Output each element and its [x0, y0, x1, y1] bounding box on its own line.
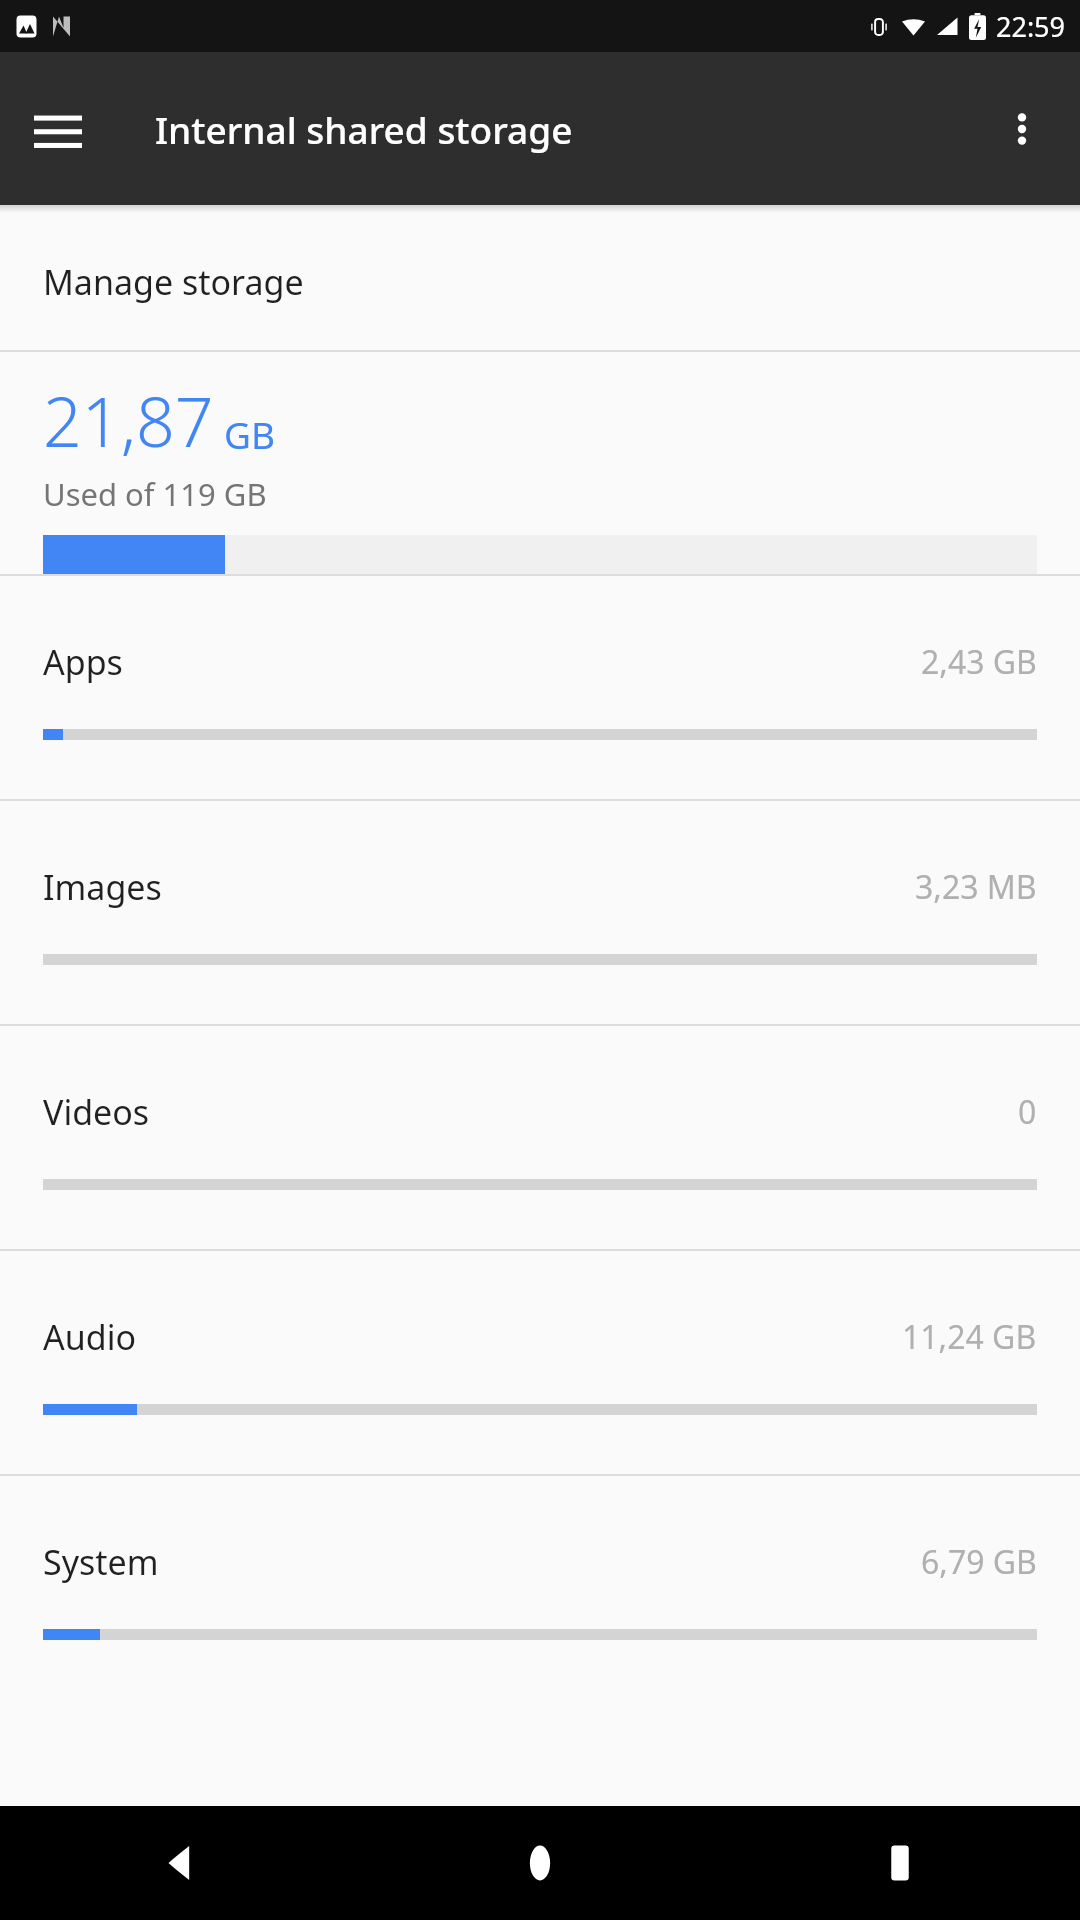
button[interactable]: Back — [0, 1806, 360, 1920]
staticText: System — [43, 1539, 921, 1585]
staticText: 11,24 GB — [902, 1315, 1037, 1359]
staticText: 0 — [1018, 1090, 1037, 1134]
staticText: 22:59 — [996, 8, 1066, 45]
button[interactable]: Videos — [0, 1026, 1080, 1249]
staticText: Videos — [43, 1089, 1018, 1135]
staticText: Used of 119 GB — [43, 473, 267, 515]
staticText: Images — [43, 864, 915, 910]
staticText: Audio — [43, 1314, 902, 1360]
staticText: 2,43 GB — [921, 640, 1037, 684]
staticText: 6,79 GB — [921, 1540, 1037, 1584]
button[interactable]: Recent apps — [720, 1806, 1080, 1920]
button[interactable]: More options — [986, 93, 1058, 165]
staticText: GB — [224, 409, 275, 459]
button[interactable]: 21,87 — [0, 352, 1080, 574]
staticText: Manage storage — [43, 259, 304, 305]
staticText: Apps — [43, 639, 921, 685]
button[interactable]: Manage storage — [0, 213, 1080, 350]
staticText: Internal shared storage — [155, 104, 573, 154]
button[interactable]: System — [0, 1476, 1080, 1699]
staticText: 3,23 MB — [915, 865, 1037, 909]
button[interactable]: Apps — [0, 576, 1080, 799]
button[interactable]: Audio — [0, 1251, 1080, 1474]
button[interactable]: Open navigation drawer — [22, 93, 94, 165]
button[interactable]: Home — [360, 1806, 720, 1920]
button[interactable]: Images — [0, 801, 1080, 1024]
staticText: 21,87 — [43, 374, 214, 467]
